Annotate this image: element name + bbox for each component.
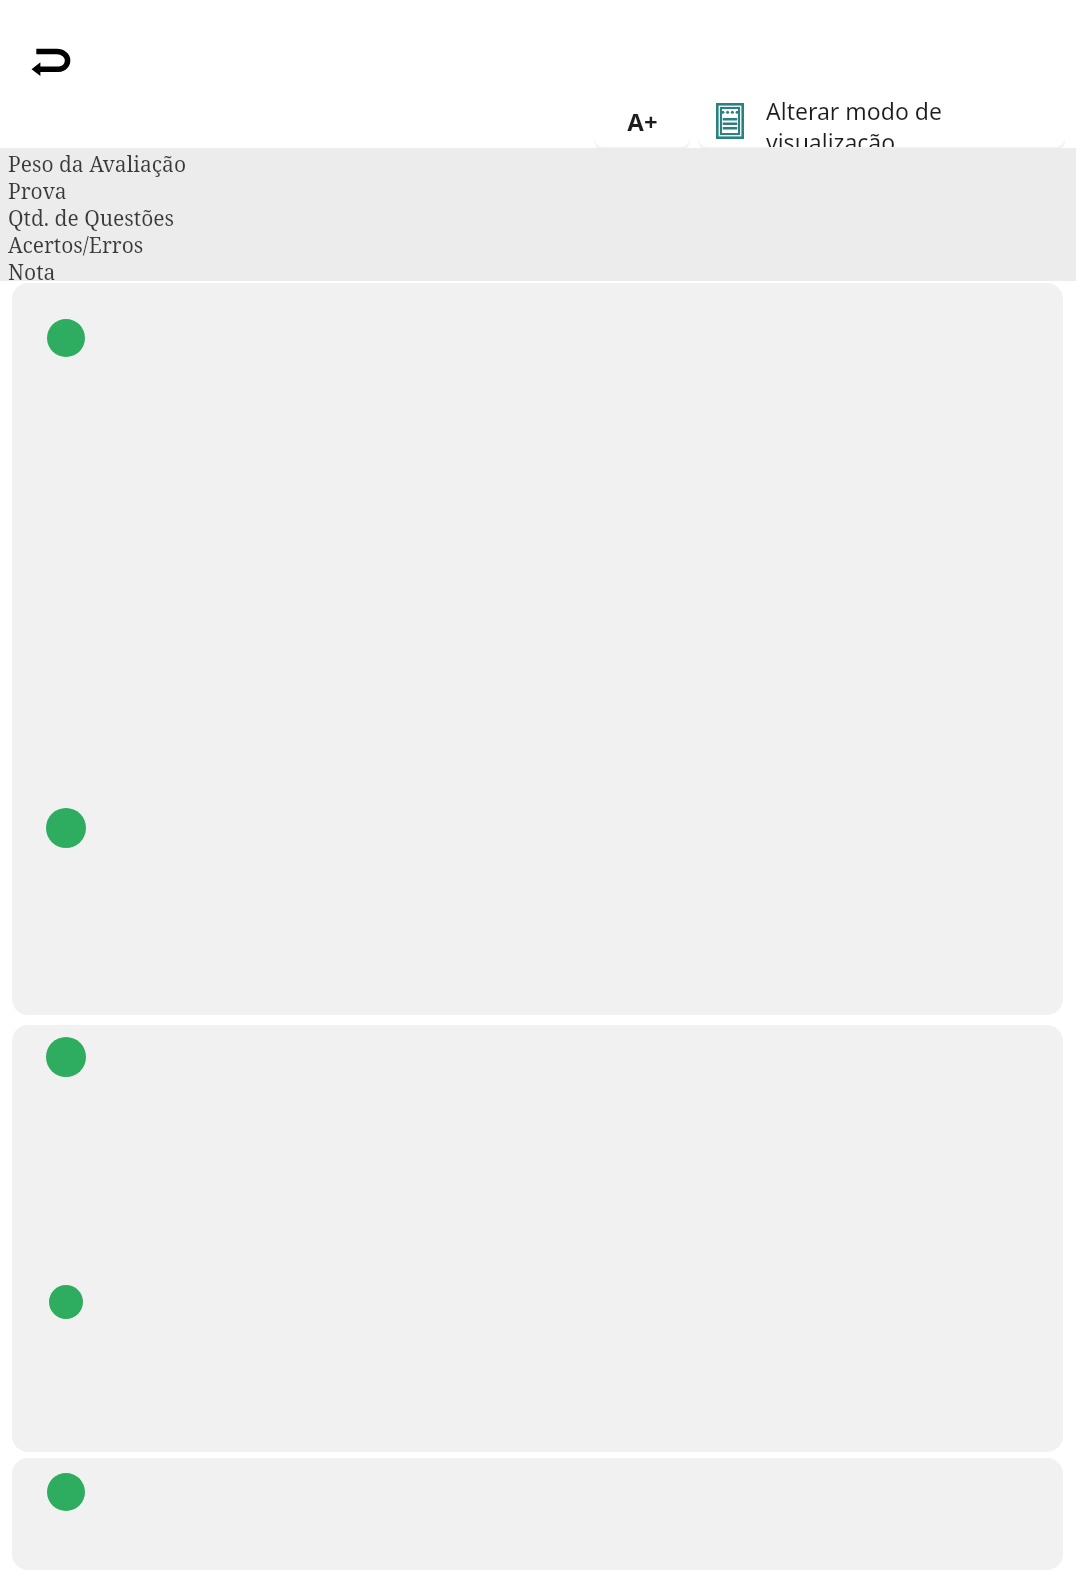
button[interactable]: A+ [594, 95, 690, 147]
staticText: A+ [627, 105, 658, 138]
staticText: Prova [8, 177, 67, 204]
button[interactable] [12, 283, 1063, 1015]
staticText: Alterar modo de visualização [766, 95, 1051, 147]
staticText: Acertos/Erros [8, 231, 144, 258]
button[interactable]: Alterar modo de visualização [698, 95, 1065, 147]
button[interactable] [12, 1025, 1063, 1452]
staticText: Qtd. de Questões [8, 204, 175, 231]
button[interactable]: Voltar [20, 38, 88, 90]
staticText: Nota [8, 258, 56, 283]
button[interactable] [12, 1458, 1063, 1570]
staticText: Peso da Avaliação [8, 150, 186, 177]
